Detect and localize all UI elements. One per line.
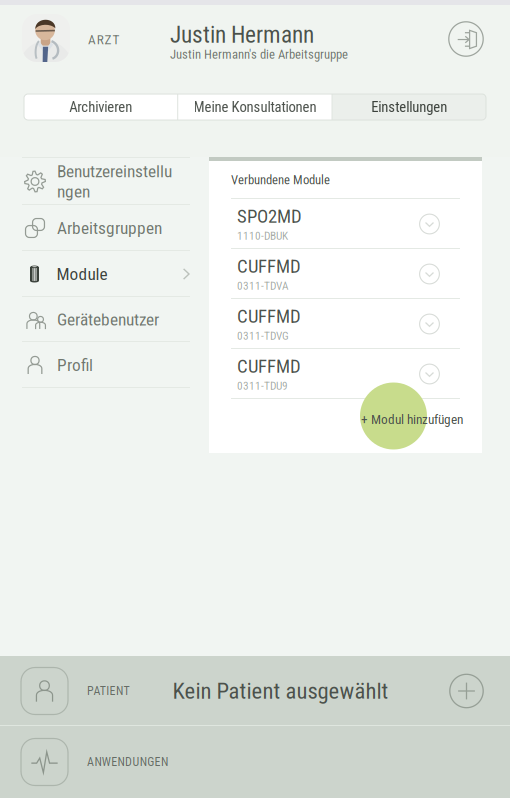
staticText: + Modul hinzufügen (361, 412, 463, 427)
staticText: ANWENDUNGEN (87, 755, 168, 769)
staticText: CUFFMD (237, 305, 301, 327)
staticText: Meine Konsultationen (193, 98, 316, 116)
staticText: Verbundene Module (231, 173, 330, 187)
button[interactable]: Einstellungen (333, 94, 486, 120)
staticText: Gerätebenutzer (57, 309, 159, 330)
button[interactable]: Archivieren (24, 94, 177, 120)
staticText: 0311-TDVG (237, 329, 289, 343)
staticText: Benutzereinstellu ngen (57, 161, 172, 202)
button[interactable]: Gerätebenutzer (0, 297, 209, 342)
button[interactable]: Arbeitsgruppen (0, 205, 209, 251)
staticText: CUFFMD (237, 255, 301, 277)
staticText: Arbeitsgruppen (57, 218, 162, 238)
staticText: 0311-TDVA (237, 279, 289, 293)
staticText: Profil (57, 355, 93, 375)
staticText: ARZT (88, 32, 119, 48)
button[interactable]: Profil (0, 342, 209, 388)
button[interactable]: Abmelden (448, 21, 484, 57)
staticText: 1110-DBUK (237, 229, 288, 243)
staticText: Einstellungen (371, 98, 447, 116)
staticText: Module (56, 264, 107, 284)
button[interactable]: SPO2MD (209, 199, 482, 249)
staticText: 0311-TDU9 (237, 379, 288, 393)
staticText: Archivieren (69, 98, 132, 116)
button[interactable]: Module (0, 251, 209, 297)
staticText: Kein Patient ausgewählt (172, 678, 388, 704)
button[interactable]: CUFFMD (209, 299, 482, 349)
staticText: Justin Hermann's die Arbeitsgruppe (170, 47, 348, 62)
staticText: PATIENT (87, 684, 129, 698)
button[interactable]: PATIENT (0, 656, 510, 726)
button[interactable]: Meine Konsultationen (178, 94, 332, 120)
button[interactable]: + Modul hinzufügen (209, 399, 482, 453)
staticText: SPO2MD (237, 205, 302, 227)
button[interactable]: ANWENDUNGEN (0, 726, 510, 798)
button[interactable]: CUFFMD (209, 349, 482, 399)
staticText: Justin Hermann (170, 21, 314, 48)
staticText: CUFFMD (237, 355, 301, 377)
button[interactable]: CUFFMD (209, 249, 482, 299)
button[interactable]: Benutzereinstellu ngen (0, 158, 209, 205)
